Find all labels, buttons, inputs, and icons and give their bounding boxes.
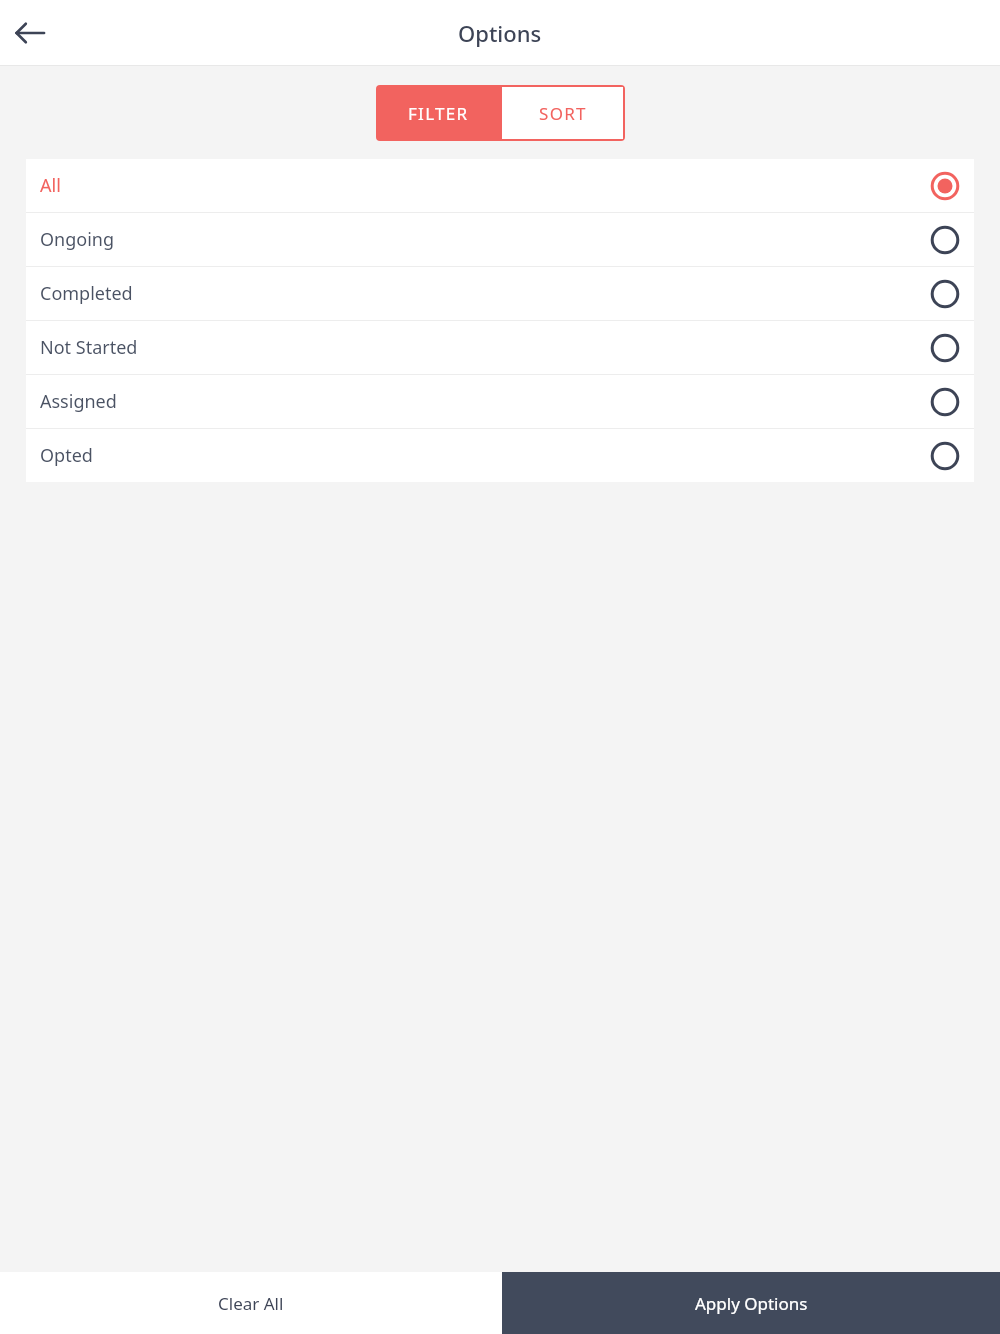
button[interactable]: SORT xyxy=(500,85,625,141)
staticText: Not Started xyxy=(40,335,930,360)
staticText: Assigned xyxy=(40,389,930,414)
button[interactable]: Ongoing xyxy=(26,213,974,266)
button[interactable]: Not Started xyxy=(26,321,974,374)
staticText: Options xyxy=(458,18,542,48)
staticText: All xyxy=(40,173,930,198)
button[interactable]: All xyxy=(26,159,974,212)
staticText: Apply Options xyxy=(695,1292,808,1315)
staticText: Clear All xyxy=(218,1292,284,1315)
button[interactable]: FILTER xyxy=(376,85,500,141)
button[interactable]: Completed xyxy=(26,267,974,320)
button[interactable]: Assigned xyxy=(26,375,974,428)
staticText: FILTER xyxy=(408,102,469,125)
staticText: SORT xyxy=(539,102,587,125)
button[interactable]: Opted xyxy=(26,429,974,482)
button[interactable]: Clear All xyxy=(0,1272,502,1334)
staticText: Opted xyxy=(40,443,930,468)
staticText: Ongoing xyxy=(40,227,930,252)
button[interactable]: Apply Options xyxy=(502,1272,1000,1334)
button[interactable]: Back xyxy=(6,9,54,57)
staticText: Completed xyxy=(40,281,930,306)
